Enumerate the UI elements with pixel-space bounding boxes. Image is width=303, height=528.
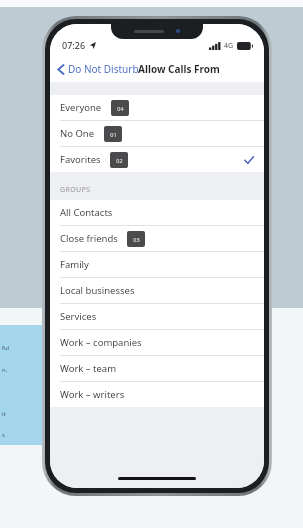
button[interactable]: All Contacts — [50, 200, 264, 225]
button[interactable]: Back — [55, 62, 139, 76]
button[interactable]: Favorites — [50, 146, 264, 172]
staticText: Do Not Disturb — [68, 62, 139, 76]
staticText: Work – companies — [60, 336, 142, 349]
button[interactable]: Local businesses — [50, 277, 264, 303]
button[interactable]: Work – team — [50, 355, 264, 381]
staticText: No One — [60, 127, 95, 140]
staticText: Local businesses — [60, 284, 135, 297]
button[interactable]: Close friends — [50, 225, 264, 251]
staticText: 01 — [110, 131, 117, 138]
staticText: Allow Calls From — [138, 62, 220, 76]
staticText: GROUPS — [60, 185, 91, 195]
staticText: All Contacts — [60, 206, 113, 219]
button[interactable]: Work – writers — [50, 381, 264, 407]
button[interactable]: Everyone — [50, 95, 264, 120]
staticText: 4G — [224, 41, 234, 51]
staticText: Favorites — [60, 153, 101, 166]
staticText: 02 — [116, 157, 123, 164]
staticText: Everyone — [60, 101, 102, 114]
staticText: ful — [2, 344, 10, 352]
other: Selected — [244, 155, 254, 165]
staticText: Work – team — [60, 362, 117, 375]
button[interactable]: Family — [50, 251, 264, 277]
staticText: it — [2, 410, 6, 418]
staticText: s — [2, 431, 5, 439]
staticText: Close friends — [60, 232, 118, 245]
button[interactable]: No One — [50, 120, 264, 146]
staticText: Services — [60, 310, 97, 323]
staticText: 03 — [133, 236, 140, 243]
staticText: Family — [60, 258, 89, 271]
button[interactable]: Work – companies — [50, 329, 264, 355]
staticText: 07:26 — [62, 39, 86, 51]
other: Back — [55, 63, 68, 76]
staticText: 04 — [117, 105, 124, 112]
staticText: Work – writers — [60, 388, 125, 401]
button[interactable]: Services — [50, 303, 264, 329]
staticText: n. — [2, 366, 8, 374]
